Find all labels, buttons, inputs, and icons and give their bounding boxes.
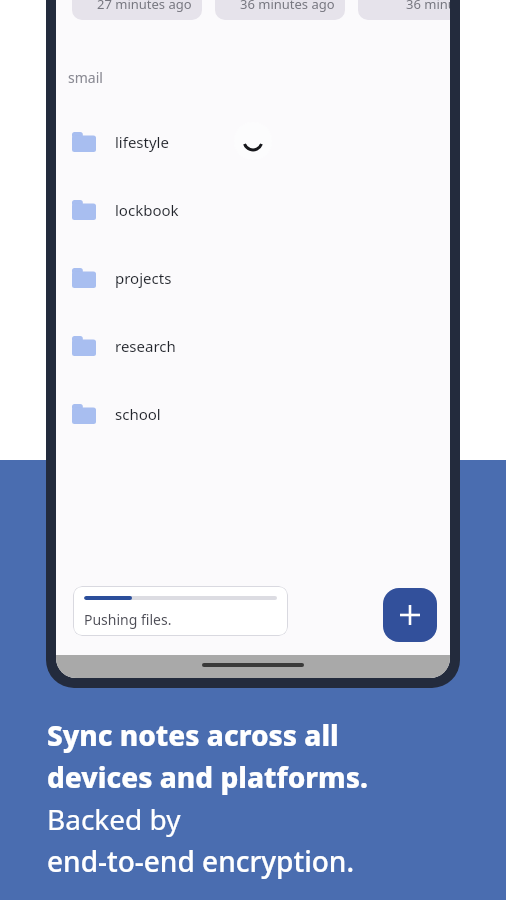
staticText: 27 minutes ago bbox=[97, 0, 192, 13]
staticText: research bbox=[115, 336, 176, 356]
button[interactable]: research bbox=[56, 312, 450, 380]
staticText: Pushing files. bbox=[84, 610, 172, 629]
button[interactable]: Pushing files. bbox=[73, 586, 288, 636]
staticText: smail bbox=[68, 68, 103, 87]
button[interactable]: lifestyle bbox=[56, 108, 450, 176]
staticText: school bbox=[115, 404, 161, 424]
staticText: Backed by bbox=[47, 800, 181, 838]
staticText: 36 minutes ago bbox=[240, 0, 335, 13]
staticText: Sync notes across all bbox=[47, 716, 339, 754]
staticText: devices and platforms. bbox=[47, 758, 368, 796]
staticText: 36 minu bbox=[406, 0, 450, 13]
button[interactable]: v0.4.2.draw bbox=[215, 0, 345, 20]
staticText: lifestyle bbox=[115, 132, 169, 152]
button[interactable]: school bbox=[56, 380, 450, 448]
button[interactable]: projects bbox=[56, 244, 450, 312]
button[interactable]: todo.md bbox=[72, 0, 202, 20]
button[interactable]: v0.10.draw bbox=[358, 0, 450, 20]
staticText: lockbook bbox=[115, 200, 179, 220]
staticText: end-to-end encryption. bbox=[47, 842, 354, 880]
staticText: projects bbox=[115, 268, 172, 288]
button[interactable]: lockbook bbox=[56, 176, 450, 244]
button[interactable]: Create new file bbox=[383, 588, 437, 642]
